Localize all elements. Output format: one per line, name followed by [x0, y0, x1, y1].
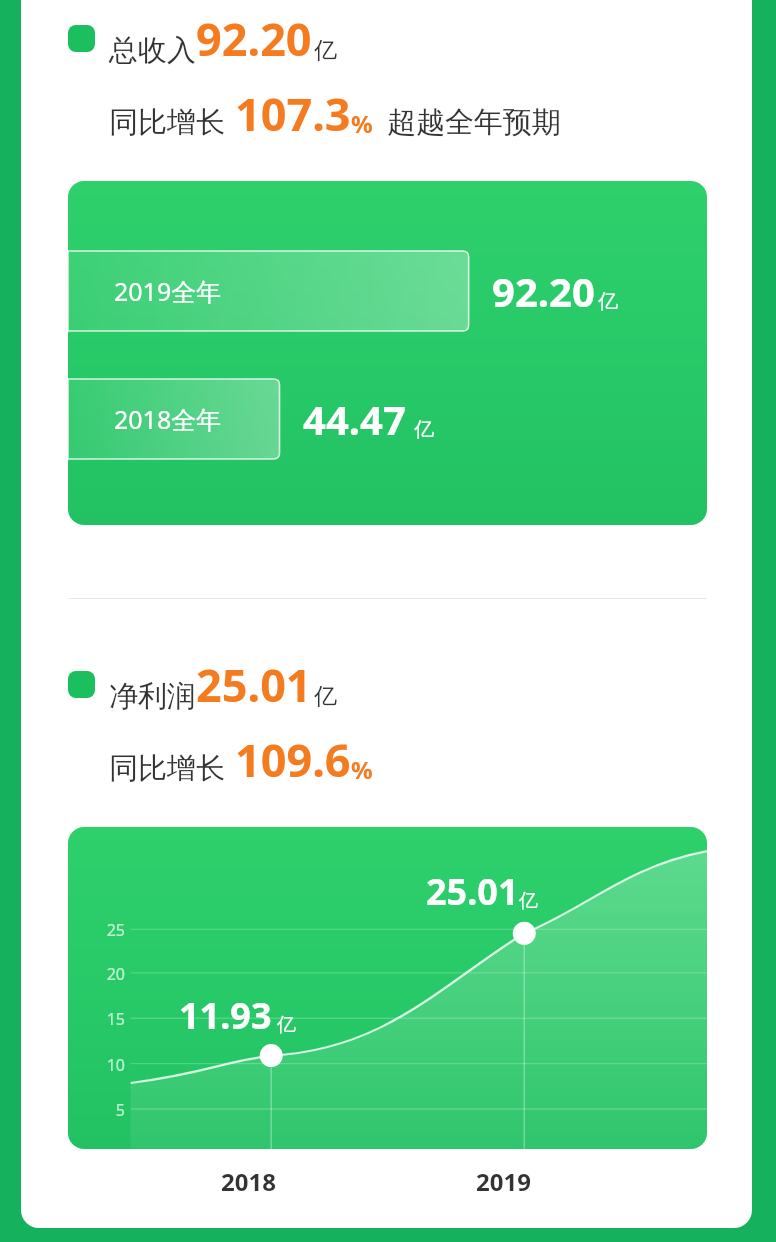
staticText: 5 — [68, 1099, 125, 1121]
staticText: 10 — [68, 1054, 125, 1076]
staticText: 2018 — [221, 1165, 276, 1198]
button[interactable]: 25 — [68, 827, 707, 1149]
button[interactable]: Revenue indicator — [68, 8, 752, 69]
staticText: 净利润 — [109, 678, 196, 715]
staticText: 亿 — [314, 682, 337, 711]
staticText: 同比增长 — [109, 750, 225, 787]
staticText: % — [351, 753, 373, 786]
staticText: 107.3 — [235, 83, 351, 144]
staticText: 25.01 — [196, 654, 312, 715]
staticText: 11.93 — [179, 991, 272, 1040]
staticText: 92.20 — [196, 8, 312, 69]
staticText: 亿 — [519, 889, 538, 913]
staticText: 25.01 — [426, 867, 519, 916]
staticText: 同比增长 — [109, 104, 225, 141]
staticText: 亿 — [314, 36, 337, 65]
button[interactable]: 2019全年 — [68, 181, 707, 525]
staticText: 15 — [68, 1008, 125, 1030]
other: Revenue indicator — [68, 25, 95, 52]
staticText: 亿 — [414, 417, 434, 442]
staticText: % — [351, 107, 373, 140]
staticText: 25 — [68, 919, 125, 941]
staticText: 亿 — [598, 289, 618, 314]
staticText: 超越全年预期 — [387, 104, 561, 141]
staticText: 亿 — [277, 1013, 296, 1037]
button[interactable]: Net profit indicator — [68, 654, 752, 715]
staticText: 92.20 — [492, 264, 595, 318]
staticText: 44.47 — [303, 392, 406, 446]
other: Net profit indicator — [68, 671, 95, 698]
staticText: 2019全年 — [114, 274, 222, 308]
staticText: 2019 — [476, 1165, 531, 1198]
staticText: 2018全年 — [114, 402, 222, 436]
staticText: 109.6 — [235, 729, 351, 790]
staticText: 总收入 — [109, 32, 196, 69]
staticText: 20 — [68, 963, 125, 985]
